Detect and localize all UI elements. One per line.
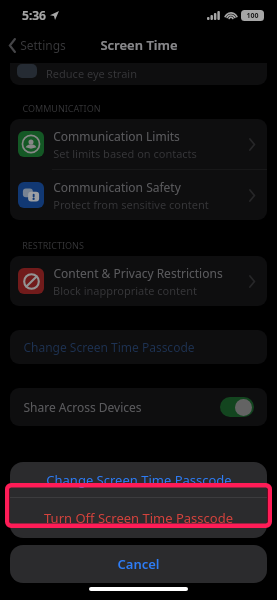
staticText: Change Screen Time Passcode [46, 471, 232, 489]
button[interactable]: Reduce eye strain [10, 63, 267, 85]
staticText: COMMUNICATION [22, 102, 101, 114]
staticText: Content & Privacy Restrictions [53, 265, 223, 281]
button[interactable]: Change Screen Time Passcode [10, 462, 267, 497]
button[interactable]: Communication Safety [10, 170, 267, 220]
staticText: Reduce eye strain [46, 66, 137, 81]
button[interactable]: Turn Off Screen Time Passcode [10, 498, 267, 538]
staticText: Protect from sensitive content [53, 197, 209, 212]
staticText: Turn Off Screen Time Passcode [44, 509, 233, 527]
staticText: Block inappropriate content [53, 283, 197, 298]
button[interactable]: Content & Privacy Restrictions [10, 256, 267, 306]
staticText: RESTRICTIONS [22, 239, 84, 251]
staticText: Cancel [117, 555, 160, 573]
staticText: Communication Safety [53, 179, 181, 195]
staticText: Communication Limits [53, 128, 180, 144]
button[interactable]: Cancel [10, 545, 267, 583]
button[interactable]: Share Across Devices [10, 388, 267, 426]
staticText: Settings [20, 37, 66, 53]
staticText: Change Screen Time Passcode [23, 339, 195, 355]
button[interactable]: Share Across Devices [220, 397, 254, 417]
staticText: Screen Time [100, 36, 178, 54]
staticText: 100 [246, 11, 259, 21]
button[interactable]: Settings [5, 32, 70, 58]
staticText: Set limits based on contacts [53, 146, 197, 161]
button[interactable]: Change Screen Time Passcode [10, 330, 267, 364]
button[interactable]: Communication Limits [10, 119, 267, 169]
staticText: Share Across Devices [23, 399, 142, 415]
staticText: 5:36 [22, 7, 46, 23]
